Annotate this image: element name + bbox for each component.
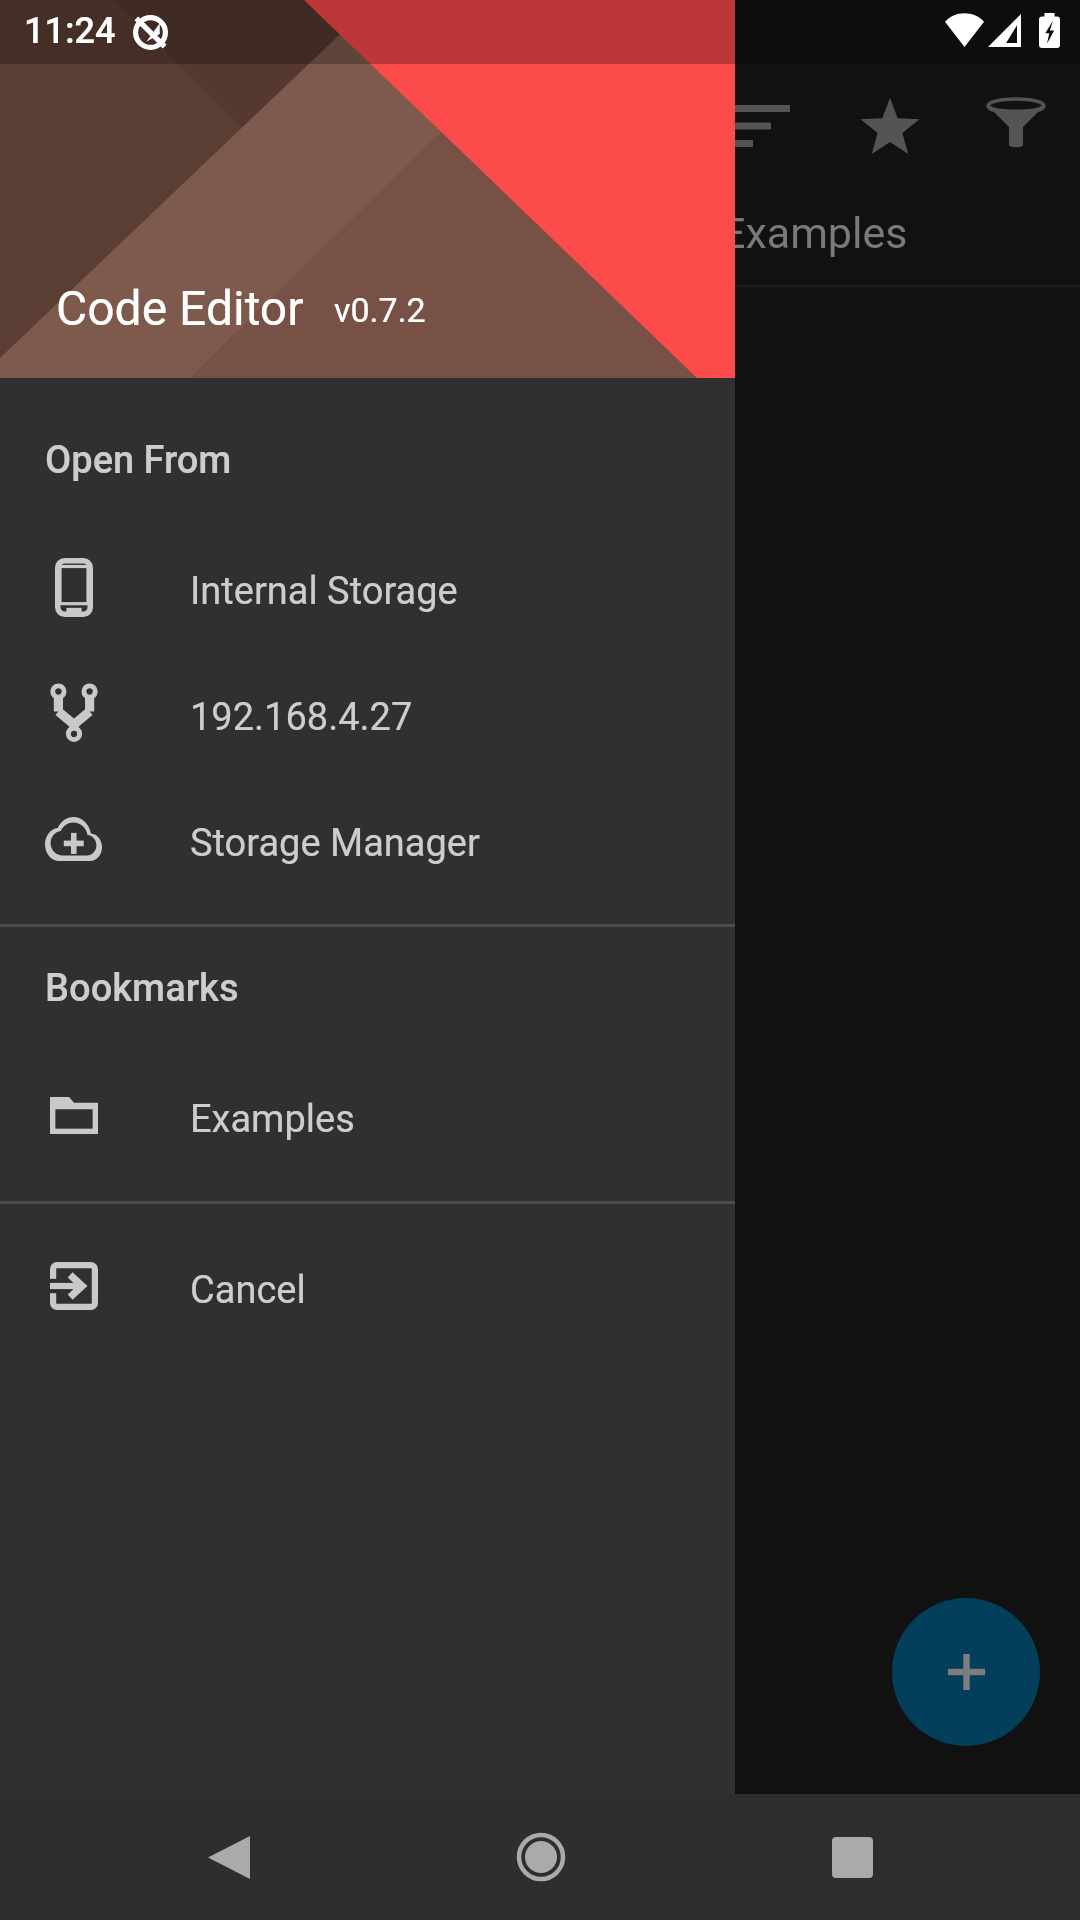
button[interactable]: Recents bbox=[787, 1794, 917, 1920]
staticText: Examples bbox=[721, 208, 908, 258]
button[interactable]: Storage Manager bbox=[0, 776, 735, 902]
staticText: 192.168.4.27 bbox=[190, 695, 413, 740]
staticText: 11:24 bbox=[24, 10, 116, 52]
button[interactable]: Back bbox=[164, 1794, 294, 1920]
button[interactable]: Examples bbox=[660, 176, 847, 286]
button[interactable]: New file bbox=[892, 1598, 1040, 1746]
button[interactable]: Examples bbox=[0, 1052, 735, 1178]
staticText: Examples bbox=[190, 1097, 355, 1142]
staticText: Open From bbox=[45, 438, 232, 483]
button[interactable]: Cancel bbox=[0, 1223, 735, 1349]
staticText: Code Editor bbox=[56, 280, 304, 336]
button[interactable]: 192.168.4.27 bbox=[0, 650, 735, 776]
button[interactable]: Internal Storage bbox=[0, 524, 735, 650]
button[interactable]: Home bbox=[476, 1794, 606, 1920]
staticText: Internal Storage bbox=[190, 569, 458, 614]
button[interactable]: Favorites bbox=[834, 70, 946, 182]
button[interactable]: Sort bbox=[706, 70, 818, 182]
staticText: Bookmarks bbox=[45, 966, 239, 1011]
staticText: v0.7.2 bbox=[334, 290, 426, 330]
staticText: Storage Manager bbox=[190, 821, 480, 866]
button[interactable]: Filter bbox=[960, 70, 1072, 182]
staticText: Cancel bbox=[190, 1268, 306, 1313]
